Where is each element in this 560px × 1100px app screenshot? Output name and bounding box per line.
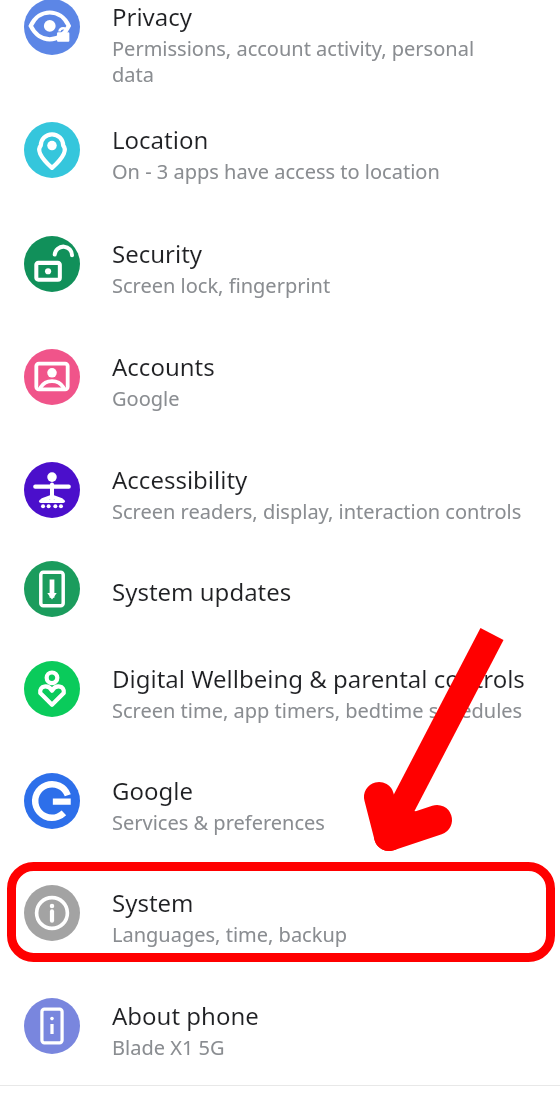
button[interactable] [24, 122, 80, 178]
staticText: Google [112, 774, 193, 807]
button[interactable] [24, 661, 80, 717]
button[interactable] [24, 998, 80, 1054]
button[interactable] [24, 885, 80, 941]
button[interactable]: Privacy [112, 0, 548, 88]
staticText: Google [112, 385, 180, 412]
staticText: System [112, 886, 194, 919]
staticText: System updates [112, 575, 292, 608]
button[interactable]: System updates [112, 575, 548, 608]
staticText: Languages, time, backup [112, 921, 348, 948]
staticText: Accounts [112, 350, 215, 383]
button[interactable] [24, 462, 80, 518]
staticText: Permissions, account activity, personal … [112, 35, 475, 88]
staticText: About phone [112, 999, 259, 1032]
staticText: Services & preferences [112, 809, 325, 836]
button[interactable] [24, 773, 80, 829]
staticText: Screen readers, display, interaction con… [112, 498, 522, 525]
staticText: Accessibility [112, 463, 248, 496]
button[interactable]: Accounts [112, 350, 548, 412]
button[interactable]: Digital Wellbeing & parental controls [112, 662, 548, 724]
button[interactable] [24, 236, 80, 292]
staticText: Screen time, app timers, bedtime schedul… [112, 697, 523, 724]
button[interactable] [24, 561, 80, 617]
button[interactable]: Security [112, 237, 548, 299]
staticText: Screen lock, fingerprint [112, 272, 331, 299]
staticText: Location [112, 123, 209, 156]
staticText: Security [112, 237, 203, 270]
staticText: Privacy [112, 0, 193, 33]
button[interactable]: System [112, 886, 548, 948]
button[interactable]: Google [112, 774, 548, 836]
button[interactable] [24, 349, 80, 405]
staticText: On - 3 apps have access to location [112, 158, 440, 185]
button[interactable]: About phone [112, 999, 548, 1061]
button[interactable]: Accessibility [112, 463, 548, 525]
staticText: Blade X1 5G [112, 1034, 225, 1061]
staticText: Digital Wellbeing & parental controls [112, 662, 525, 695]
button[interactable] [24, 0, 80, 55]
button[interactable]: Location [112, 123, 548, 185]
